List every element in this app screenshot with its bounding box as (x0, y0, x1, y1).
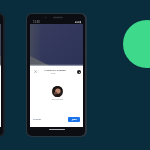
staticText: 2:40 (51, 72, 56, 75)
button[interactable]: Close (34, 70, 37, 73)
staticText: Eliot Pryde (52, 98, 63, 101)
button[interactable]: JOIN (68, 117, 80, 122)
button[interactable]: CANCEL (33, 117, 42, 122)
staticText: 12:30 (33, 20, 40, 24)
staticText: JOIN (72, 118, 77, 121)
button[interactable]: Account (77, 70, 81, 74)
staticText: A device is sharing (44, 68, 66, 71)
staticText: CANCEL (33, 118, 42, 121)
